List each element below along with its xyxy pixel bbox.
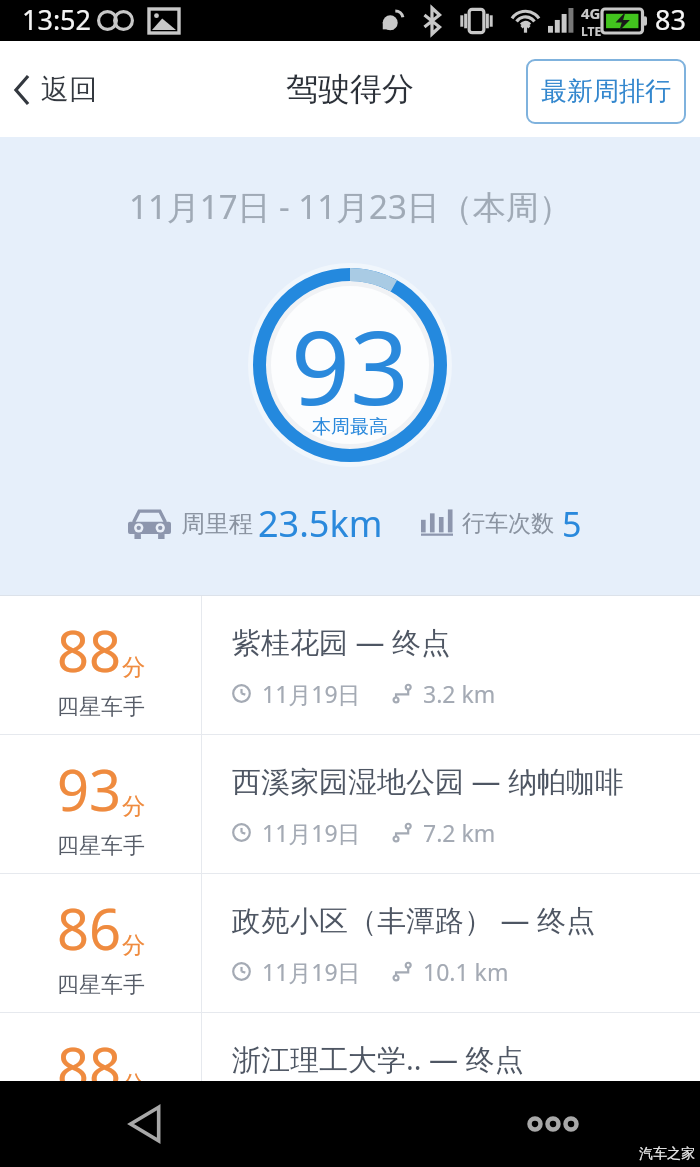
staticText: 83	[655, 1, 686, 38]
staticText: 分	[122, 1070, 145, 1099]
staticText: 93	[291, 295, 409, 435]
staticText: 周里程	[181, 509, 253, 539]
staticText: 四星车手	[57, 1110, 145, 1138]
staticText: 最新周排行	[541, 75, 671, 108]
staticText: 驾驶得分	[286, 69, 414, 109]
staticText: LTE	[581, 23, 602, 39]
staticText: 88	[57, 612, 122, 688]
staticText: 11月17日 - 11月23日（本周）	[129, 184, 572, 229]
button[interactable]: 88	[0, 1013, 700, 1151]
staticText: 23.5km	[258, 499, 383, 548]
staticText: 11月19日	[262, 956, 361, 987]
button[interactable]: Back	[110, 1089, 180, 1159]
button[interactable]: 最新周排行	[526, 59, 686, 124]
staticText: 西溪家园湿地公园 — 纳帕咖啡	[232, 761, 625, 801]
staticText: 四星车手	[57, 832, 145, 860]
staticText: 3.2 km	[423, 678, 496, 709]
staticText: 13:52	[22, 1, 92, 38]
staticText: 5	[562, 501, 582, 547]
staticText: 行车次数	[462, 509, 554, 538]
staticText: 4G	[581, 3, 601, 23]
staticText: 分	[122, 792, 145, 821]
staticText: 四星车手	[57, 971, 145, 999]
staticText: 11月19日	[262, 678, 361, 709]
staticText: 分	[122, 653, 145, 682]
staticText: 汽车之家	[639, 1145, 695, 1163]
staticText: 浙江理工大学.. — 终点	[232, 1039, 524, 1079]
staticText: 紫桂花园 — 终点	[232, 622, 451, 662]
staticText: 88	[57, 1029, 122, 1105]
staticText: 7.2 km	[423, 817, 496, 848]
button[interactable]: 返回	[0, 56, 117, 123]
button[interactable]: 86	[0, 874, 700, 1012]
staticText: 四星车手	[57, 693, 145, 721]
button[interactable]: 88	[0, 596, 700, 734]
staticText: 93	[57, 751, 122, 827]
button[interactable]: 93	[0, 735, 700, 873]
staticText: 86	[57, 890, 122, 966]
staticText: 政苑小区（丰潭路） — 终点	[232, 900, 596, 940]
staticText: 分	[122, 931, 145, 960]
staticText: 10.1 km	[423, 956, 509, 987]
button[interactable]: Menu	[519, 1089, 589, 1159]
staticText: 11月19日	[262, 817, 361, 848]
staticText: 返回	[41, 72, 97, 107]
staticText: 本周最高	[312, 415, 388, 439]
